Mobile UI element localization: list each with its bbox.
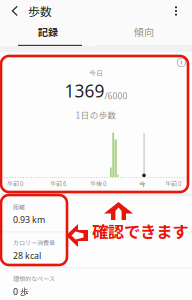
button[interactable]: 理想的なペース <box>0 268 192 300</box>
staticText: カロリー消費量 <box>13 238 55 247</box>
button[interactable]: 距離 <box>0 196 192 232</box>
staticText: 午後 0 <box>90 179 106 188</box>
staticText: 距離 <box>13 202 25 211</box>
staticText: 1369 <box>64 79 104 103</box>
staticText: 歩数 <box>28 2 52 20</box>
button[interactable]: Information <box>176 52 192 68</box>
staticText: 理想的なペース <box>13 274 55 283</box>
staticText: 午前 0 <box>165 179 181 188</box>
staticText: 28 kcal <box>13 250 41 262</box>
button[interactable]: カロリー消費量 <box>0 232 192 268</box>
button[interactable]: 傾向 <box>96 22 192 46</box>
staticText: 記録 <box>38 24 58 39</box>
button[interactable]: 記録 <box>0 22 96 46</box>
staticText: 今 <box>139 179 145 188</box>
staticText: 午前 6 <box>50 179 66 188</box>
staticText: 今日 <box>89 68 103 78</box>
staticText: 0.93 km <box>13 214 45 226</box>
staticText: 0 歩 <box>13 286 29 298</box>
button[interactable]: More options <box>165 0 187 22</box>
staticText: 確認できます <box>92 219 188 243</box>
staticText: 午前 0 <box>7 179 23 188</box>
button[interactable]: Back <box>2 0 28 22</box>
staticText: 傾向 <box>134 24 154 39</box>
staticText: 1日の歩数 <box>75 109 116 121</box>
staticText: /6000 <box>104 90 127 102</box>
